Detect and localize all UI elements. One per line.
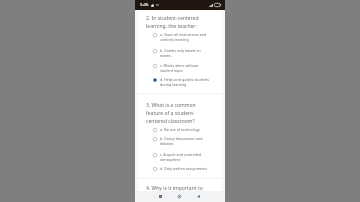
staticText: 4. Why is it important to (146, 184, 203, 192)
staticText: 3. What is a common feature of a student… (146, 101, 206, 125)
button[interactable]: Back (192, 191, 204, 202)
staticText: d. Helps and guides students during lear… (160, 77, 210, 87)
staticText: 2. In student-centered learning, the tea… (146, 14, 206, 30)
staticText: a. Gives all instructions and controls l… (160, 32, 210, 42)
button[interactable]: Recent apps (154, 191, 166, 202)
staticText: 5:46 (140, 2, 149, 8)
button[interactable]: b. Grades only based on exams (135, 46, 225, 60)
button[interactable]: a. No use of technology (135, 125, 225, 134)
button[interactable]: Home (173, 191, 185, 202)
staticText: c. Works alone without student input (160, 63, 210, 73)
button[interactable]: c. Works alone without student input (135, 61, 225, 75)
staticText: b. Group discussions and debates (160, 136, 210, 146)
button[interactable]: 3. What is a common feature of a student… (146, 101, 206, 125)
button[interactable]: d. Only written assignments (135, 164, 225, 173)
button[interactable]: b. Group discussions and debates (135, 134, 225, 148)
button[interactable]: a. Gives all instructions and controls l… (135, 30, 225, 44)
button[interactable]: c. A quiet and controlled atmosphere (135, 150, 225, 164)
staticText: d. Only written assignments (160, 166, 208, 171)
button[interactable]: 2. In student-centered learning, the tea… (146, 14, 206, 30)
staticText: a. No use of technology (160, 127, 200, 132)
staticText: b. Grades only based on exams (160, 48, 210, 58)
staticText: c. A quiet and controlled atmosphere (160, 152, 210, 162)
button[interactable]: d. Helps and guides students during lear… (135, 75, 225, 89)
button[interactable]: 4. Why is it important to (146, 184, 206, 192)
